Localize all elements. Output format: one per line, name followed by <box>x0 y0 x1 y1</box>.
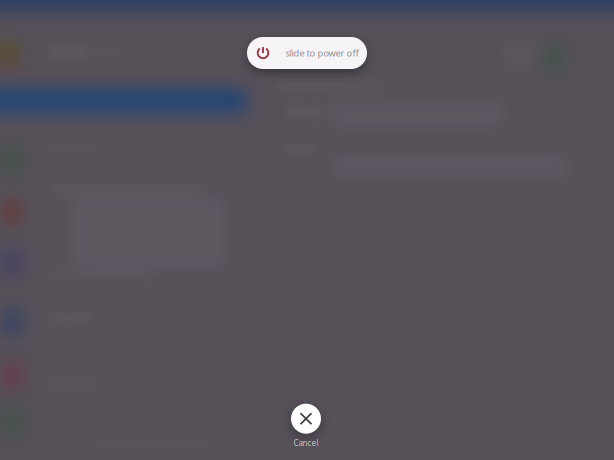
staticText: Cancel <box>293 438 318 448</box>
button[interactable]: Cancel <box>291 404 321 448</box>
button[interactable]: slide to power off <box>247 37 367 69</box>
staticText: slide to power off <box>285 47 358 59</box>
